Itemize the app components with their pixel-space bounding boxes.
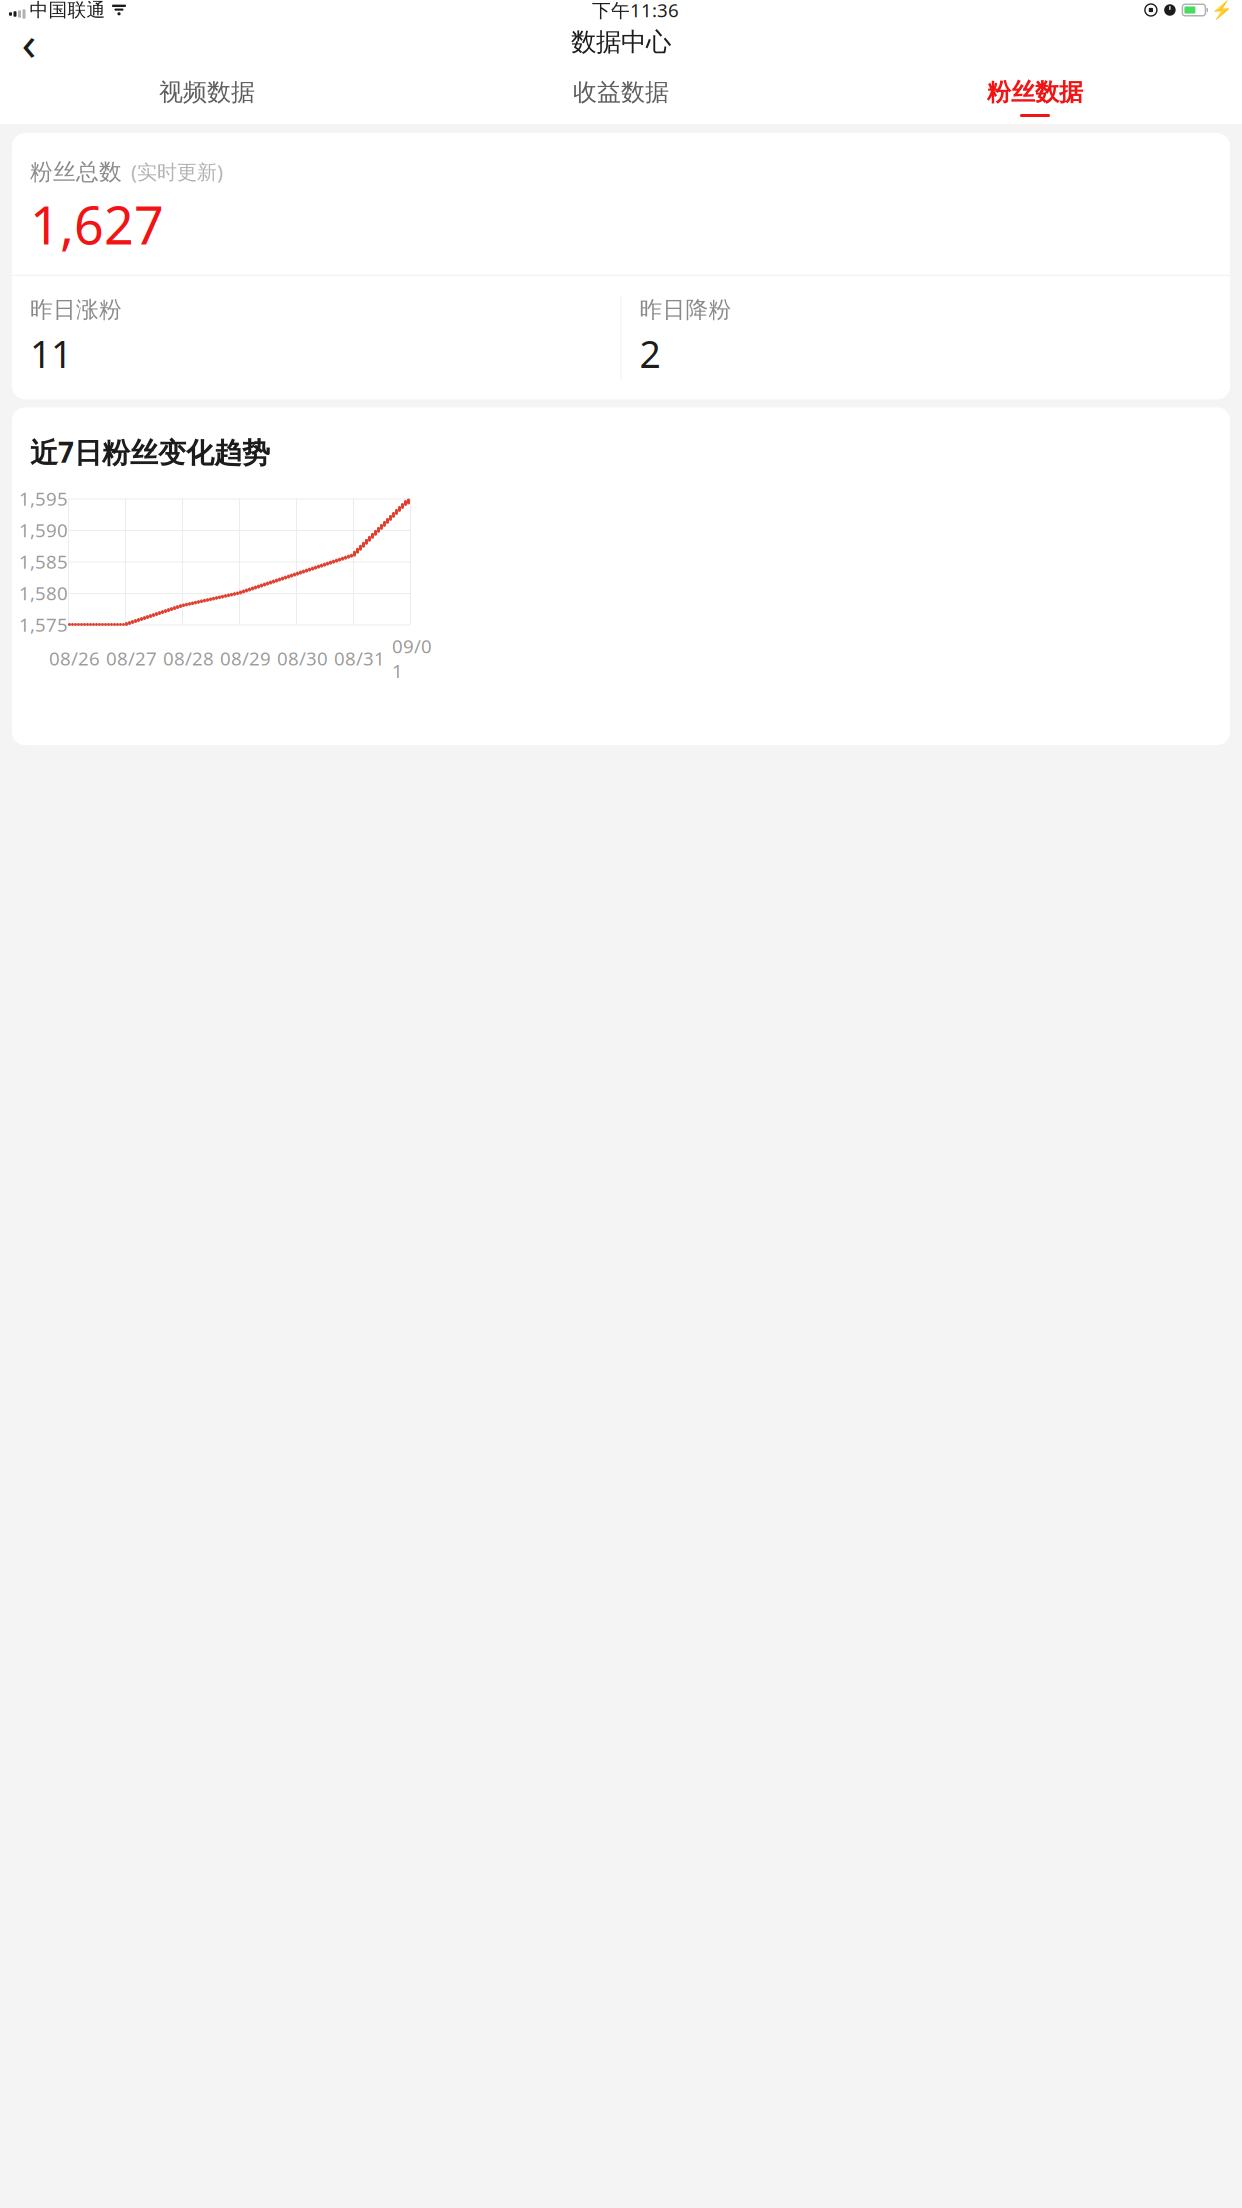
staticText: 收益数据 (573, 77, 669, 107)
staticText: 下午11:36 (592, 0, 679, 22)
staticText: 近7日粉丝变化趋势 (30, 433, 270, 470)
staticText: 08/30 (277, 646, 328, 671)
staticText: 1,575 (19, 612, 68, 637)
button[interactable]: 视频数据 (0, 64, 414, 124)
staticText: 中国联通 (29, 0, 105, 21)
staticText: 09/01 (392, 633, 432, 683)
staticText: 视频数据 (159, 77, 255, 107)
staticText: ‹ (21, 10, 36, 74)
button[interactable]: 粉丝数据 (828, 64, 1242, 124)
staticText: 1,590 (19, 518, 68, 542)
staticText: 1,585 (19, 549, 68, 574)
button[interactable]: 收益数据 (414, 64, 828, 124)
staticText: (实时更新) (131, 158, 223, 185)
staticText: 11 (30, 329, 72, 378)
staticText: 08/29 (220, 646, 271, 671)
staticText: 08/31 (334, 646, 385, 671)
staticText: 数据中心 (571, 26, 671, 57)
staticText: 2 (639, 329, 660, 378)
staticText: 1,580 (19, 581, 68, 605)
staticText: 08/28 (163, 646, 214, 671)
staticText: ⚡ (1211, 0, 1233, 20)
staticText: 粉丝总数 (30, 158, 122, 186)
button[interactable]: 返回 (6, 20, 52, 64)
staticText: 粉丝数据 (987, 77, 1083, 107)
staticText: 08/26 (49, 646, 100, 671)
staticText: 1,627 (30, 190, 164, 259)
staticText: 08/27 (106, 646, 157, 671)
staticText: 昨日涨粉 (30, 296, 122, 324)
staticText: 1,595 (19, 486, 68, 511)
staticText: 昨日降粉 (639, 296, 731, 324)
